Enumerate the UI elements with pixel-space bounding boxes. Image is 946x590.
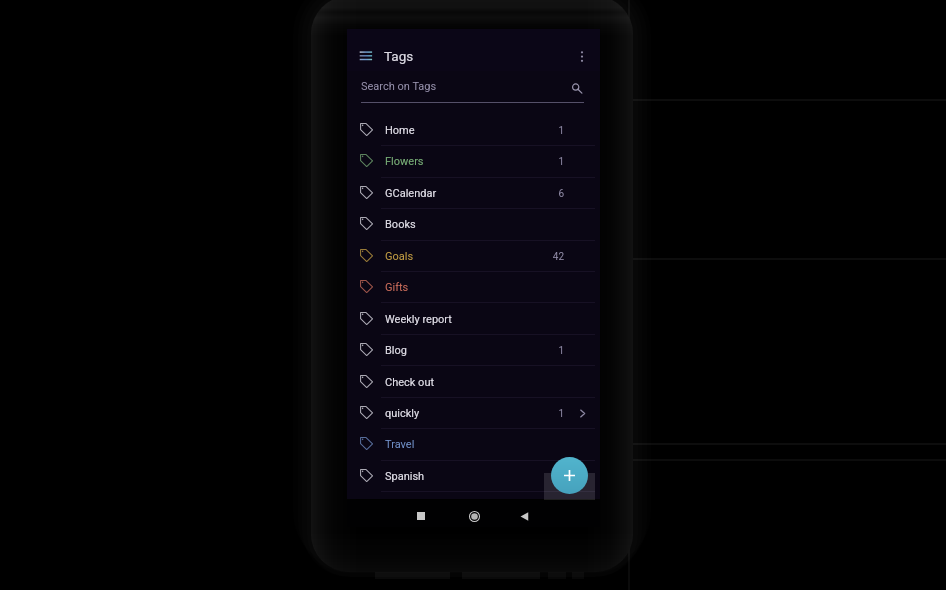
staticText: Travel <box>385 438 415 451</box>
button[interactable]: Travel <box>347 428 600 459</box>
button[interactable]: More options <box>572 46 592 66</box>
staticText: 6 <box>524 188 564 200</box>
button[interactable]: Flowers <box>347 145 600 176</box>
staticText: GCalendar <box>385 187 437 200</box>
button[interactable]: Open tag <box>574 405 590 421</box>
button[interactable]: quickly <box>347 397 600 428</box>
staticText: Goals <box>385 250 414 263</box>
staticText: 42 <box>524 251 564 263</box>
staticText: quickly <box>385 407 420 420</box>
staticText: Blog <box>385 344 407 357</box>
button[interactable]: Back <box>512 504 536 528</box>
staticText: 1 <box>524 345 564 357</box>
button[interactable]: Gifts <box>347 271 600 302</box>
button[interactable]: Goals <box>347 240 600 271</box>
button[interactable]: Home <box>347 114 600 145</box>
staticText: Search on Tags <box>361 80 437 93</box>
staticText: Tags <box>384 48 414 64</box>
staticText: Gifts <box>385 281 409 294</box>
button[interactable]: Blog <box>347 334 600 365</box>
staticText: 1 <box>524 156 564 168</box>
button[interactable]: Search <box>567 77 587 97</box>
button[interactable]: Weekly report <box>347 303 600 334</box>
button[interactable]: Books <box>347 208 600 239</box>
button[interactable]: Home <box>462 504 486 528</box>
staticText: Spanish <box>385 470 425 483</box>
staticText: 1 <box>524 408 564 420</box>
button[interactable]: Recent apps <box>409 504 433 528</box>
button[interactable]: Open navigation drawer <box>355 46 375 66</box>
staticText: Check out <box>385 376 435 389</box>
staticText: Home <box>385 124 415 137</box>
staticText: Books <box>385 218 416 231</box>
button[interactable]: Add new tag <box>551 457 588 494</box>
button[interactable]: Check out <box>347 366 600 397</box>
button[interactable]: Spanish <box>347 460 600 491</box>
button[interactable]: GCalendar <box>347 177 600 208</box>
staticText: Flowers <box>385 155 424 168</box>
staticText: Weekly report <box>385 313 452 326</box>
staticText: 1 <box>524 125 564 137</box>
